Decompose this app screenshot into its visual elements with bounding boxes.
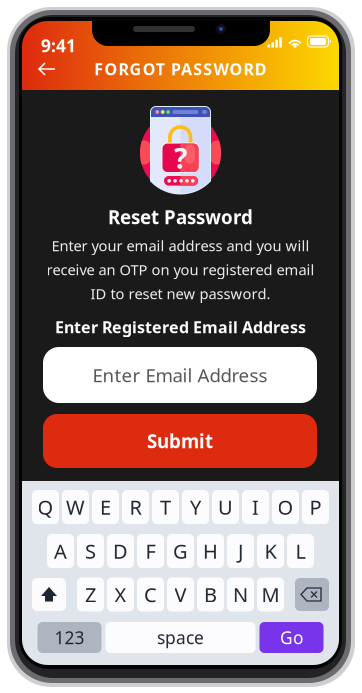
staticText: O bbox=[277, 494, 293, 520]
button[interactable]: Enter Email Address bbox=[43, 347, 317, 403]
staticText: Z bbox=[85, 581, 96, 608]
staticText: Submit bbox=[147, 429, 213, 453]
button[interactable]: X bbox=[107, 577, 134, 611]
button[interactable]: Y bbox=[182, 490, 209, 524]
button[interactable]: J bbox=[227, 534, 254, 568]
button[interactable]: U bbox=[212, 490, 239, 524]
staticText: V bbox=[174, 581, 186, 608]
staticText: receive an OTP on you registered email bbox=[46, 260, 314, 279]
button[interactable]: A bbox=[47, 534, 74, 568]
button[interactable]: F bbox=[137, 534, 164, 568]
staticText: Reset Password bbox=[108, 205, 253, 229]
staticText: K bbox=[264, 538, 276, 564]
button[interactable]: O bbox=[272, 490, 299, 524]
staticText: Q bbox=[37, 494, 53, 520]
staticText: R bbox=[129, 494, 141, 520]
staticText: Y bbox=[190, 494, 201, 520]
staticText: N bbox=[233, 581, 248, 608]
button[interactable]: S bbox=[77, 534, 104, 568]
button[interactable]: V bbox=[167, 577, 194, 611]
staticText: D bbox=[113, 538, 128, 564]
staticText: P bbox=[309, 494, 321, 520]
button[interactable]: Submit bbox=[43, 414, 317, 468]
button[interactable]: L bbox=[287, 534, 314, 568]
staticText: T bbox=[160, 494, 171, 520]
staticText: W bbox=[66, 494, 85, 520]
button[interactable]: I bbox=[242, 490, 269, 524]
button[interactable]: M bbox=[257, 577, 284, 611]
staticText: Enter Email Address bbox=[92, 363, 267, 387]
button[interactable]: P bbox=[302, 490, 329, 524]
button[interactable]: Delete bbox=[295, 578, 329, 611]
button[interactable]: D bbox=[107, 534, 134, 568]
button[interactable]: Z bbox=[77, 577, 104, 611]
staticText: E bbox=[100, 494, 111, 520]
button[interactable]: Q bbox=[32, 490, 59, 524]
staticText: S bbox=[85, 538, 96, 564]
staticText: ID to reset new password. bbox=[90, 284, 270, 303]
staticText: L bbox=[295, 538, 305, 564]
staticText: X bbox=[114, 581, 126, 608]
button[interactable]: G bbox=[167, 534, 194, 568]
staticText: Enter Registered Email Address bbox=[55, 316, 306, 338]
staticText: B bbox=[204, 581, 217, 608]
staticText: ? bbox=[174, 139, 187, 176]
staticText: F bbox=[145, 538, 155, 564]
button[interactable]: R bbox=[122, 490, 149, 524]
staticText: 9:41 bbox=[41, 34, 76, 57]
button[interactable]: W bbox=[62, 490, 89, 524]
staticText: A bbox=[54, 538, 67, 564]
button[interactable]: N bbox=[227, 577, 254, 611]
button[interactable]: C bbox=[137, 577, 164, 611]
button[interactable]: E bbox=[92, 490, 119, 524]
staticText: H bbox=[203, 538, 218, 564]
staticText: C bbox=[144, 581, 157, 608]
button[interactable]: 123 bbox=[37, 622, 101, 653]
button[interactable]: K bbox=[257, 534, 284, 568]
staticText: U bbox=[218, 494, 233, 520]
staticText: Go bbox=[280, 626, 303, 649]
button[interactable]: B bbox=[197, 577, 224, 611]
button[interactable]: space bbox=[105, 622, 255, 653]
staticText: I bbox=[252, 494, 259, 520]
button[interactable]: Shift bbox=[32, 578, 66, 611]
button[interactable]: Go bbox=[259, 622, 323, 653]
staticText: M bbox=[261, 581, 279, 608]
staticText: G bbox=[173, 538, 188, 564]
staticText: 123 bbox=[54, 626, 84, 649]
staticText: J bbox=[238, 538, 243, 564]
button[interactable]: Back bbox=[31, 57, 63, 81]
button[interactable]: T bbox=[152, 490, 179, 524]
staticText: FORGOT PASSWORD bbox=[94, 58, 267, 80]
staticText: space bbox=[157, 626, 204, 649]
staticText: Enter your email address and you will bbox=[51, 236, 309, 255]
button[interactable]: H bbox=[197, 534, 224, 568]
